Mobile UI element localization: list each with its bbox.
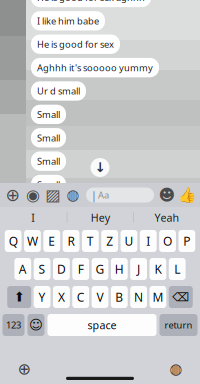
button[interactable]: T	[82, 230, 99, 252]
staticText: E	[48, 233, 55, 249]
staticText: 👍	[178, 187, 196, 203]
button[interactable]: H	[111, 258, 128, 280]
staticText: Hey	[91, 210, 110, 225]
button[interactable]: Emoji	[27, 314, 44, 336]
button[interactable]: space	[47, 314, 156, 336]
button[interactable]: C	[72, 286, 89, 308]
button[interactable]: Stickers	[158, 185, 176, 205]
staticText: G	[95, 261, 104, 277]
staticText: I	[31, 210, 35, 225]
staticText: |	[91, 188, 97, 202]
button[interactable]: E	[43, 230, 60, 252]
button[interactable]: Numbers	[2, 314, 24, 336]
button[interactable]: U	[120, 230, 137, 252]
staticText: ⌫	[172, 290, 189, 304]
button[interactable]: D	[53, 258, 70, 280]
button[interactable]: L	[169, 258, 186, 280]
button[interactable]: S	[34, 258, 50, 280]
button[interactable]: P	[178, 230, 195, 252]
staticText: ⊕	[17, 360, 30, 378]
button[interactable]: W	[24, 230, 41, 252]
button[interactable]: Send like	[178, 185, 196, 205]
button[interactable]: O	[159, 230, 176, 252]
staticText: C	[77, 289, 85, 305]
staticText: I like him babe	[37, 15, 99, 27]
button[interactable]: N	[130, 286, 147, 308]
staticText: L	[174, 261, 180, 277]
button[interactable]: A	[14, 258, 31, 280]
staticText: Small	[37, 132, 60, 144]
staticText: H	[115, 261, 124, 277]
staticText: Small	[37, 178, 60, 191]
staticText: D	[57, 261, 66, 277]
staticText: ⊕	[5, 185, 20, 205]
staticText: T	[87, 233, 94, 249]
staticText: M	[152, 289, 163, 305]
button[interactable]: Hey	[67, 207, 133, 228]
button[interactable]: F	[72, 258, 89, 280]
staticText: O	[163, 233, 172, 249]
staticText: return	[164, 319, 192, 331]
staticText: N	[134, 289, 143, 305]
button[interactable]: Scroll to latest message	[90, 158, 109, 177]
staticText: Y	[39, 289, 46, 305]
button[interactable]: X	[53, 286, 70, 308]
staticText: K	[154, 261, 161, 277]
button[interactable]: Camera	[24, 185, 42, 205]
button[interactable]: G	[92, 258, 108, 280]
staticText: I	[146, 233, 150, 249]
staticText: P	[183, 233, 190, 249]
staticText: Small	[37, 155, 60, 167]
button[interactable]: B	[111, 286, 128, 308]
button[interactable]: Delete	[169, 286, 193, 308]
button[interactable]: Next keyboard	[14, 359, 34, 379]
button[interactable]: I	[0, 207, 67, 228]
staticText: V	[96, 289, 103, 305]
staticText: Aa	[98, 189, 109, 201]
staticText: ☺	[29, 317, 43, 332]
staticText: He is good for sex	[37, 38, 114, 50]
staticText: F	[78, 261, 84, 277]
button[interactable]: K	[149, 258, 166, 280]
staticText: X	[58, 289, 65, 305]
button[interactable]: Photos	[44, 185, 62, 205]
button[interactable]: return	[159, 314, 197, 336]
staticText: ▨	[45, 186, 60, 204]
staticText: Yeah	[154, 210, 179, 225]
staticText: Z	[106, 233, 113, 249]
button[interactable]: Y	[34, 286, 50, 308]
button[interactable]: I	[140, 230, 157, 252]
staticText: space	[87, 318, 116, 332]
staticText: A	[19, 261, 27, 277]
button[interactable]: J	[130, 258, 147, 280]
staticText: R	[67, 233, 74, 249]
button[interactable]: Z	[101, 230, 118, 252]
staticText: ◍	[66, 187, 79, 203]
staticText: W	[27, 233, 38, 249]
staticText: ↓	[94, 160, 105, 175]
staticText: 123	[6, 319, 21, 331]
staticText: Q	[9, 233, 18, 249]
staticText: Small	[37, 108, 60, 121]
staticText: U	[124, 233, 133, 249]
staticText: Aghhh it's sooooo yummy	[37, 61, 153, 74]
staticText: ☻	[158, 186, 175, 204]
button[interactable]: Yeah	[134, 207, 200, 228]
button[interactable]: Q	[5, 230, 21, 252]
staticText: B	[115, 289, 123, 305]
staticText: He is good for sex aghhh	[37, 0, 145, 4]
button[interactable]: Dictation	[166, 359, 186, 379]
button[interactable]: V	[92, 286, 108, 308]
staticText: Ur d small	[37, 85, 80, 97]
button[interactable]: Shift	[7, 286, 31, 308]
staticText: J	[137, 261, 140, 277]
button[interactable]: R	[63, 230, 79, 252]
staticText: ◉	[26, 186, 40, 204]
staticText: ⬆	[14, 289, 25, 304]
staticText: ◍	[169, 361, 182, 377]
button[interactable]: M	[149, 286, 166, 308]
button[interactable]: Voice message	[64, 185, 82, 205]
button[interactable]: Open actions	[4, 185, 22, 205]
staticText: S	[39, 261, 46, 277]
